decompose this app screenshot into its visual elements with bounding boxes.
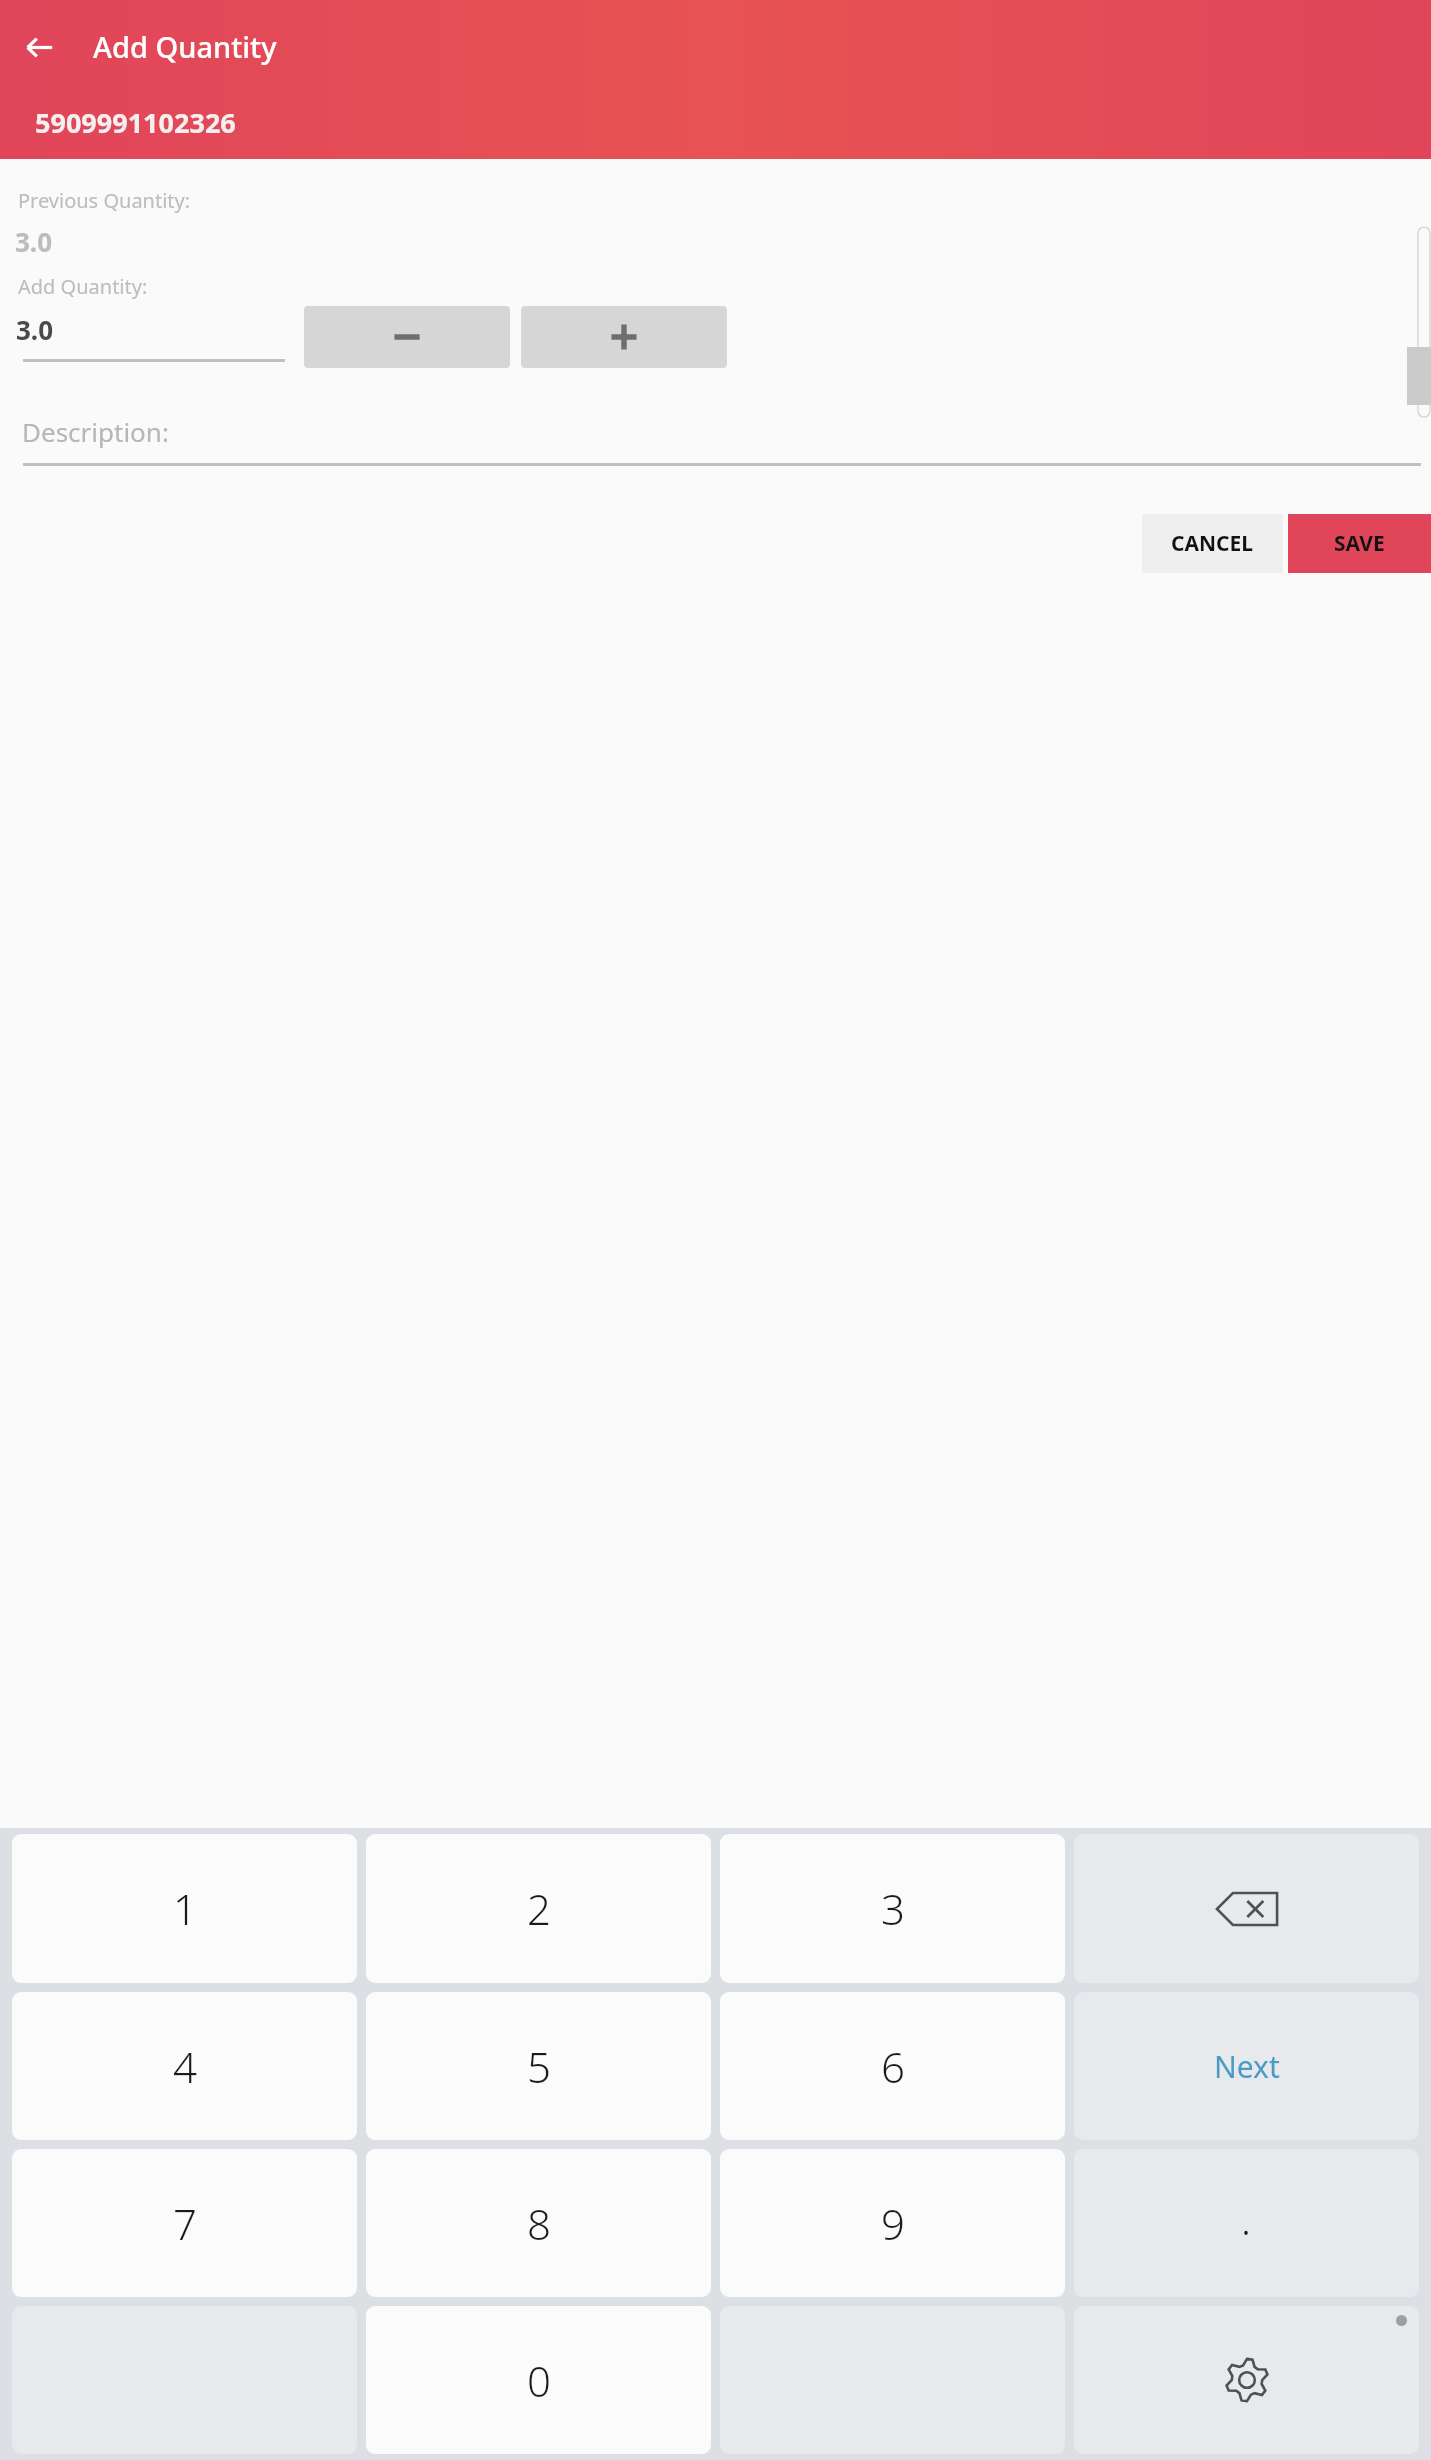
staticText: 7 (173, 2195, 197, 2252)
staticText: 8 (527, 2195, 551, 2252)
staticText: 3 (881, 1880, 905, 1937)
staticText: Description: (22, 414, 169, 449)
staticText: 5909991102326 (35, 104, 236, 141)
staticText: CANCEL (1171, 529, 1254, 558)
button[interactable]: Decrease quantity (304, 306, 510, 368)
button[interactable]: 4 (12, 1992, 357, 2140)
button[interactable]: Increase quantity (521, 306, 727, 368)
staticText: 2 (527, 1880, 551, 1937)
button[interactable]: CANCEL (1142, 514, 1283, 573)
button[interactable]: 2 (366, 1834, 711, 1983)
staticText: 9 (881, 2195, 905, 2252)
button[interactable]: Backspace (1074, 1834, 1419, 1983)
staticText: 3.0 (16, 312, 54, 347)
button[interactable]: Back (14, 22, 64, 72)
button[interactable]: Keyboard settings (1074, 2306, 1419, 2454)
button[interactable]: 6 (720, 1992, 1065, 2140)
staticText: 6 (881, 2038, 905, 2095)
staticText: 0 (527, 2352, 551, 2409)
staticText: 1 (173, 1880, 197, 1937)
button[interactable]: 1 (12, 1834, 357, 1983)
staticText: 5 (527, 2038, 551, 2095)
staticText: . (1242, 2203, 1251, 2244)
button[interactable]: 3 (720, 1834, 1065, 1983)
button[interactable]: 8 (366, 2149, 711, 2297)
staticText: Add Quantity: (18, 273, 148, 300)
staticText: Add Quantity (93, 27, 277, 66)
staticText: 4 (173, 2038, 197, 2095)
staticText: Next (1214, 2046, 1280, 2087)
button[interactable]: 7 (12, 2149, 357, 2297)
button[interactable]: 9 (720, 2149, 1065, 2297)
staticText: Previous Quantity: (18, 187, 191, 214)
button[interactable]: 5 (366, 1992, 711, 2140)
button[interactable]: Next (1074, 1992, 1419, 2140)
button[interactable]: 0 (366, 2306, 711, 2454)
button[interactable]: SAVE (1288, 514, 1431, 573)
staticText: SAVE (1334, 529, 1385, 558)
staticText: 3.0 (15, 224, 53, 259)
